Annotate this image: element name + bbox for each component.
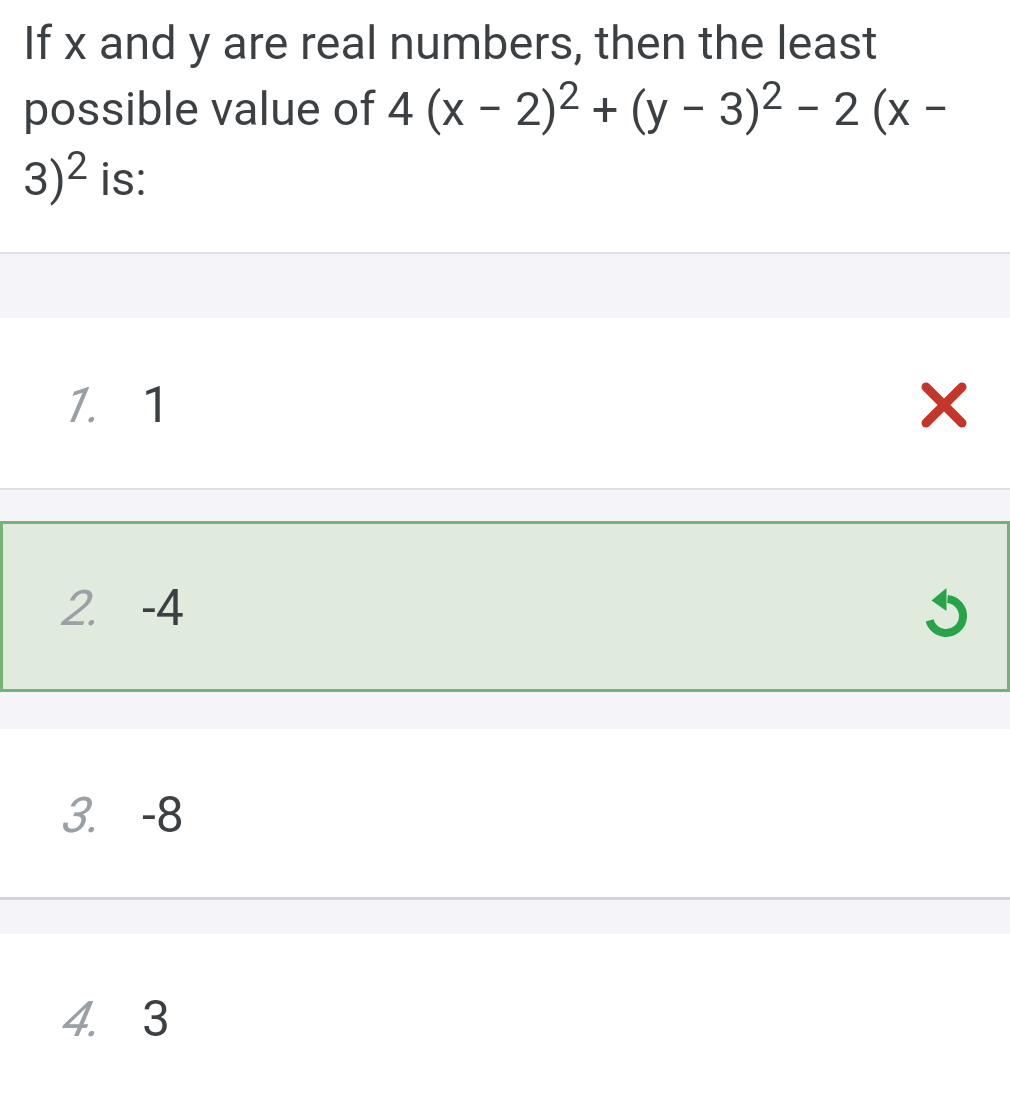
staticText: 3 bbox=[142, 990, 171, 1049]
staticText: If x and y are real numbers, then the le… bbox=[23, 15, 878, 70]
button[interactable]: 2. bbox=[0, 521, 1010, 692]
staticText: + (y − 3) bbox=[580, 81, 762, 136]
staticText: 1 bbox=[142, 376, 171, 435]
button[interactable]: 3. bbox=[0, 729, 1010, 897]
staticText: -8 bbox=[142, 786, 184, 845]
staticText: 2 bbox=[558, 73, 580, 119]
staticText: 2 bbox=[66, 143, 88, 189]
button[interactable]: 4. bbox=[0, 934, 1010, 1101]
staticText: possible value of 4 (x − 2) bbox=[23, 81, 558, 136]
staticText: 1. bbox=[60, 377, 100, 434]
button[interactable]: 1. bbox=[0, 318, 1010, 488]
staticText: 2 bbox=[761, 73, 783, 119]
staticText: is: bbox=[88, 151, 147, 206]
staticText: 3. bbox=[60, 787, 100, 844]
staticText: − 2 (x − bbox=[783, 81, 950, 136]
staticText: 2. bbox=[60, 580, 100, 637]
staticText: 4. bbox=[60, 991, 100, 1048]
staticText: 3) bbox=[23, 151, 66, 206]
staticText: -4 bbox=[142, 579, 184, 638]
